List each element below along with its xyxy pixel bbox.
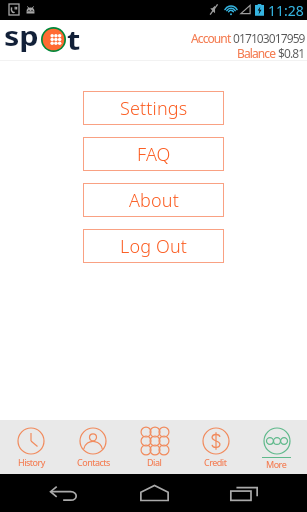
button[interactable]: Dial: [124, 420, 185, 474]
staticText: Account: [191, 30, 233, 46]
button[interactable]: Back: [33, 474, 95, 512]
staticText: Dial: [147, 456, 162, 468]
staticText: FAQ: [137, 142, 171, 167]
staticText: Contacts: [77, 456, 110, 468]
button[interactable]: About: [83, 183, 224, 217]
button[interactable]: Recent apps: [213, 474, 275, 512]
staticText: Balance: [237, 45, 278, 59]
staticText: Settings: [120, 96, 188, 121]
button[interactable]: Log Out: [83, 229, 224, 263]
staticText: History: [18, 456, 45, 468]
button[interactable]: Settings: [83, 91, 224, 125]
staticText: Credit: [204, 456, 227, 468]
button[interactable]: History: [0, 420, 62, 474]
staticText: 11:28: [268, 1, 304, 20]
button[interactable]: Contacts: [62, 420, 124, 474]
button[interactable]: More: [246, 420, 307, 474]
button[interactable]: Credit: [185, 420, 246, 474]
staticText: t: [67, 21, 81, 58]
staticText: $0.81: [278, 45, 305, 59]
button[interactable]: FAQ: [83, 137, 224, 171]
staticText: sp: [4, 17, 39, 54]
staticText: More: [266, 458, 287, 470]
button[interactable]: Home: [123, 474, 185, 512]
staticText: 017103017959: [233, 30, 305, 46]
staticText: Log Out: [120, 234, 188, 259]
staticText: About: [129, 188, 179, 213]
